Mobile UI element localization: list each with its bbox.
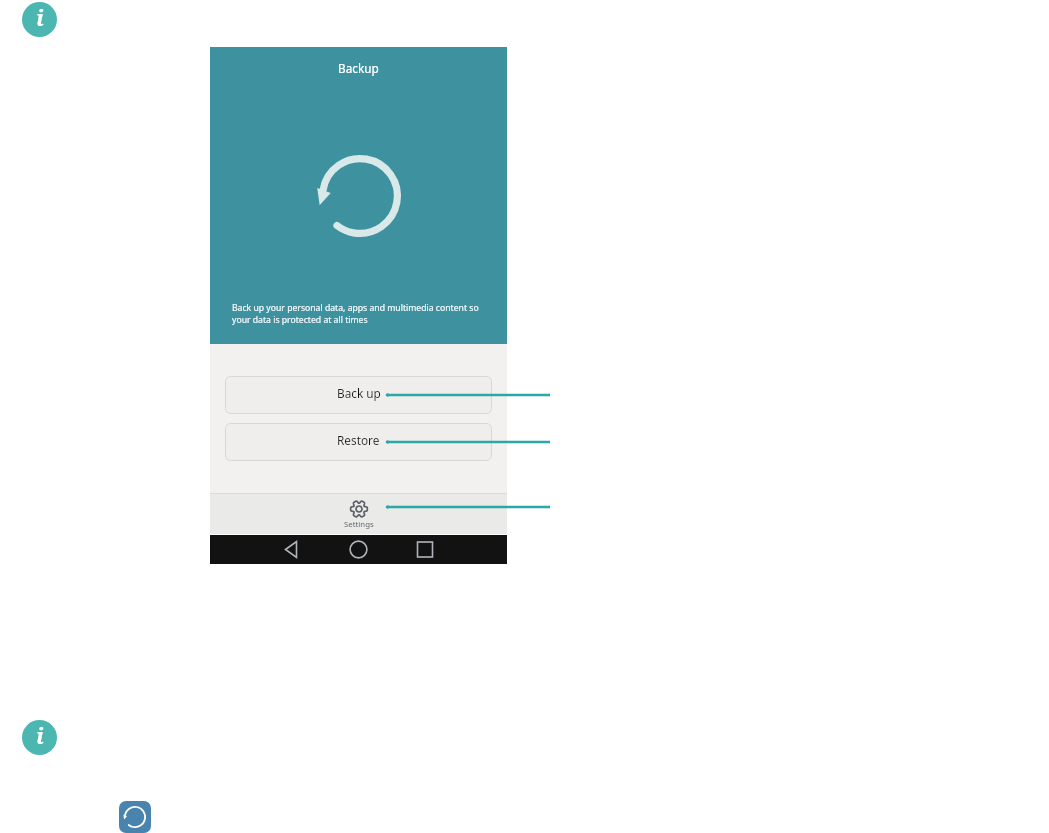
staticText: Settings	[344, 519, 374, 530]
staticText: Back up your personal data, apps and mul…	[232, 302, 488, 325]
button[interactable]: Back up	[225, 376, 492, 414]
button[interactable]: Info	[22, 2, 57, 37]
button[interactable]: Annotation	[380, 389, 556, 401]
staticText: Back up	[337, 385, 381, 401]
staticText: i	[36, 722, 44, 751]
button[interactable]: Backup app	[119, 801, 151, 833]
button[interactable]: Annotation	[380, 436, 556, 448]
button[interactable]: Settings	[210, 493, 507, 535]
button[interactable]: Annotation	[380, 501, 556, 513]
staticText: Backup	[338, 60, 379, 76]
button[interactable]: Info	[22, 720, 57, 755]
staticText: Restore	[337, 432, 380, 448]
button[interactable]: Restore	[225, 423, 492, 461]
staticText: i	[36, 4, 44, 33]
